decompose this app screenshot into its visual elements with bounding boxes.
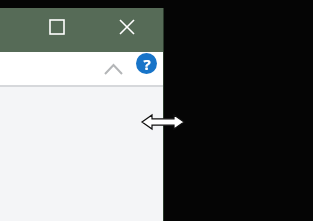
staticText: ? (143, 54, 151, 74)
button[interactable]: Help (136, 53, 157, 74)
button[interactable]: Collapse ribbon (99, 57, 127, 81)
button[interactable]: Close (113, 13, 141, 41)
button[interactable]: Maximize (43, 13, 71, 41)
